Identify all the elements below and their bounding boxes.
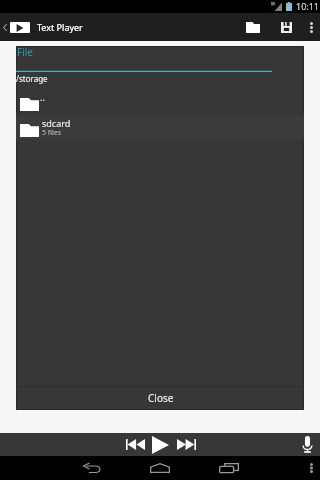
button[interactable]: Close [16,387,304,410]
button[interactable]: Home [145,456,175,480]
staticText: Text Player [37,21,83,33]
button[interactable]: Navigate up [0,13,10,41]
button[interactable]: Next track [173,433,199,456]
button[interactable]: .. [16,87,304,115]
staticText: sdcard [42,117,71,129]
button[interactable]: sdcard [16,115,304,139]
button[interactable]: Open file [236,13,270,41]
button[interactable]: Back [77,456,107,480]
button[interactable]: More options [302,13,320,41]
staticText: 5 files [42,128,62,138]
staticText: Close [148,391,174,405]
button[interactable]: Menu [302,456,320,480]
button[interactable]: Voice search [296,433,319,456]
staticText: 10:11 [296,0,320,12]
button[interactable]: Previous track [122,433,148,456]
button[interactable]: Recent apps [214,456,244,480]
staticText: .. [40,91,45,103]
staticText: File [17,45,33,59]
button[interactable]: Save [272,13,300,41]
staticText: /storage [16,73,48,84]
button[interactable]: Play [149,433,172,456]
